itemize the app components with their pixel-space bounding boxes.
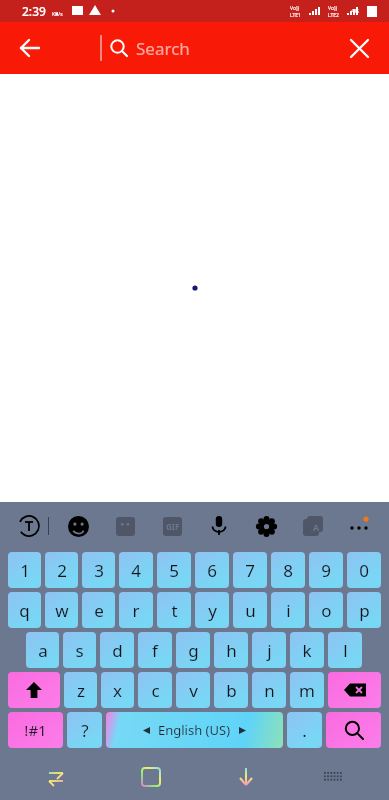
staticText: t	[171, 599, 178, 622]
staticText: 8	[283, 559, 293, 582]
button[interactable]: 6	[195, 552, 229, 588]
button[interactable]: ?	[67, 712, 102, 748]
staticText: KB/s	[52, 11, 63, 18]
button[interactable]: GIF	[153, 507, 191, 545]
staticText: Search	[136, 37, 190, 60]
staticText: 4G	[351, 7, 359, 15]
button[interactable]: 8	[271, 552, 305, 588]
button[interactable]: 0	[347, 552, 381, 588]
staticText: !#1	[24, 720, 47, 740]
staticText: ?	[81, 719, 89, 742]
button[interactable]: l	[328, 632, 362, 668]
button[interactable]: 9	[309, 552, 343, 588]
button[interactable]: More options	[341, 507, 379, 545]
button[interactable]: p	[347, 592, 381, 628]
button[interactable]: Emoji	[59, 507, 97, 545]
button[interactable]: Backspace	[328, 672, 381, 708]
staticText: 5	[169, 559, 179, 582]
staticText: n	[264, 679, 275, 702]
staticText: m	[299, 679, 315, 702]
staticText: s	[75, 639, 84, 662]
button[interactable]: v	[176, 672, 210, 708]
staticText: i	[286, 599, 291, 622]
staticText: Vo)) LTE1	[290, 5, 301, 18]
staticText: h	[226, 639, 237, 662]
button[interactable]: x	[101, 672, 134, 708]
button[interactable]: Translate	[294, 507, 332, 545]
staticText: f	[152, 639, 158, 662]
staticText: English (US)	[158, 721, 231, 739]
button[interactable]: a	[26, 632, 59, 668]
staticText: Vo)) LTE2	[328, 5, 339, 18]
button[interactable]: Recents	[131, 757, 171, 797]
staticText: GIF	[166, 521, 180, 532]
staticText: j	[267, 639, 272, 662]
button[interactable]: Space	[106, 712, 283, 748]
staticText: b	[226, 679, 237, 702]
button[interactable]: Back	[8, 26, 52, 70]
button[interactable]: r	[119, 592, 153, 628]
button[interactable]: b	[214, 672, 248, 708]
button[interactable]: w	[45, 592, 78, 628]
button[interactable]: Settings	[247, 507, 285, 545]
staticText: k	[302, 639, 312, 662]
button[interactable]: n	[252, 672, 286, 708]
staticText: 3	[94, 559, 104, 582]
button[interactable]: 3	[82, 552, 115, 588]
button[interactable]: 1	[8, 552, 41, 588]
button[interactable]: z	[64, 672, 97, 708]
staticText: x	[113, 679, 122, 702]
button[interactable]: u	[233, 592, 267, 628]
button[interactable]: t	[157, 592, 191, 628]
button[interactable]: h	[214, 632, 248, 668]
staticText: 2	[57, 559, 67, 582]
button[interactable]: Back	[36, 757, 76, 797]
button[interactable]: Search	[100, 35, 190, 61]
button[interactable]: .	[287, 712, 322, 748]
button[interactable]: Search	[326, 712, 381, 748]
button[interactable]: d	[100, 632, 134, 668]
staticText: a	[38, 639, 48, 662]
staticText: u	[245, 599, 256, 622]
staticText: v	[189, 679, 198, 702]
button[interactable]: Keyboard switch	[313, 757, 353, 797]
button[interactable]: c	[138, 672, 172, 708]
button[interactable]: Stickers	[106, 507, 144, 545]
staticText: 7	[245, 559, 255, 582]
button[interactable]: j	[252, 632, 286, 668]
staticText: q	[19, 599, 30, 622]
staticText: y	[208, 599, 217, 622]
button[interactable]: Shift	[8, 672, 60, 708]
staticText: l	[343, 639, 348, 662]
button[interactable]: Translate toggle	[10, 507, 48, 545]
staticText: p	[359, 599, 370, 622]
button[interactable]: i	[271, 592, 305, 628]
staticText: e	[94, 599, 104, 622]
button[interactable]: 2	[45, 552, 78, 588]
button[interactable]: s	[63, 632, 96, 668]
button[interactable]: !#1	[8, 712, 63, 748]
button[interactable]: m	[290, 672, 324, 708]
staticText: 6	[207, 559, 217, 582]
button[interactable]: f	[138, 632, 172, 668]
button[interactable]: 7	[233, 552, 267, 588]
staticText: g	[188, 639, 199, 662]
button[interactable]: e	[82, 592, 115, 628]
button[interactable]: k	[290, 632, 324, 668]
button[interactable]: Close	[337, 26, 381, 70]
staticText: .	[302, 719, 307, 742]
staticText: 9	[321, 559, 331, 582]
button[interactable]: q	[8, 592, 41, 628]
staticText: 1	[20, 559, 30, 582]
button[interactable]: Hide keyboard	[226, 757, 266, 797]
staticText: z	[77, 679, 85, 702]
staticText: w	[55, 599, 69, 622]
button[interactable]: o	[309, 592, 343, 628]
button[interactable]: g	[176, 632, 210, 668]
button[interactable]: 4	[119, 552, 153, 588]
button[interactable]: 5	[157, 552, 191, 588]
button[interactable]: Voice input	[200, 507, 238, 545]
staticText: 0	[359, 559, 369, 582]
button[interactable]: y	[195, 592, 229, 628]
staticText: d	[112, 639, 123, 662]
